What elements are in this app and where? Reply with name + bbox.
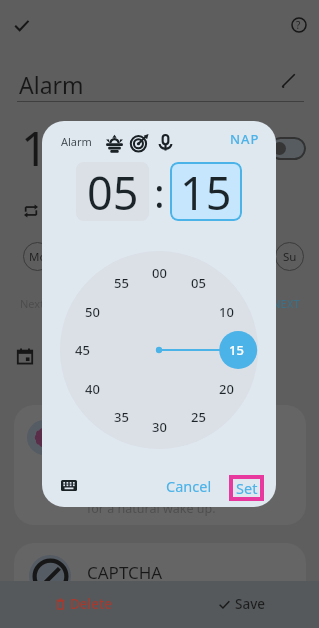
staticText: Mo xyxy=(29,249,47,265)
button[interactable]: Cancel xyxy=(165,475,213,497)
button[interactable]: Keyboard input xyxy=(59,477,79,493)
button[interactable]: Su xyxy=(275,242,304,271)
staticText: ? xyxy=(296,18,301,32)
staticText: We xyxy=(113,249,130,265)
staticText: for a natural wake up. xyxy=(87,500,216,517)
button[interactable]: Fr xyxy=(191,242,220,271)
staticText: 05 xyxy=(191,274,206,292)
button[interactable]: Save xyxy=(219,595,266,613)
button[interactable]: Target xyxy=(129,132,150,153)
staticText: 10:30 xyxy=(21,116,142,180)
button[interactable]: Gradual wake up xyxy=(14,405,306,525)
staticText: Cancel xyxy=(166,476,212,496)
button[interactable]: Confirm xyxy=(9,12,35,38)
button[interactable]: Delete xyxy=(56,595,112,613)
button[interactable]: Help xyxy=(286,12,312,38)
staticText: 15 xyxy=(229,341,244,359)
staticText: 00 xyxy=(152,264,167,282)
staticText: Delete xyxy=(70,595,112,613)
button[interactable]: Edit xyxy=(277,68,301,92)
button[interactable]: NAP xyxy=(224,128,266,150)
button[interactable]: Alarm enabled xyxy=(269,137,306,160)
staticText: NEXT xyxy=(272,296,300,311)
staticText: 50 xyxy=(85,303,100,321)
staticText: CAPTCHA xyxy=(87,561,163,584)
staticText: NAP xyxy=(230,130,260,148)
staticText: : xyxy=(154,165,165,219)
staticText: 05 xyxy=(87,162,139,221)
staticText: 40 xyxy=(85,380,100,398)
staticText: Su xyxy=(283,249,297,265)
staticText: Gradual wake up xyxy=(74,427,209,450)
staticText: 20 xyxy=(219,380,234,398)
button[interactable]: 15 xyxy=(170,162,242,221)
staticText: 55 xyxy=(114,274,129,292)
staticText: Alarm xyxy=(19,69,84,100)
button[interactable]: Set xyxy=(229,475,264,501)
button[interactable]: 05 xyxy=(76,162,149,221)
staticText: 25 xyxy=(191,408,206,426)
button[interactable]: Voice xyxy=(155,132,176,153)
button[interactable]: Th xyxy=(149,242,178,271)
staticText: 15 xyxy=(180,162,232,221)
staticText: Set xyxy=(236,478,258,498)
staticText: Next alarm in 12 h 30 m xyxy=(20,296,144,311)
button[interactable]: We xyxy=(107,242,136,271)
button[interactable]: Sunrise xyxy=(104,132,125,153)
staticText: Save xyxy=(235,595,266,613)
staticText: Alarm xyxy=(61,134,92,149)
staticText: 35 xyxy=(114,408,129,426)
button[interactable]: Mo xyxy=(23,242,52,271)
button[interactable]: CAPTCHA xyxy=(14,543,306,623)
staticText: 30 xyxy=(152,418,167,436)
staticText: 45 xyxy=(75,341,90,359)
staticText: 10 xyxy=(219,303,234,321)
